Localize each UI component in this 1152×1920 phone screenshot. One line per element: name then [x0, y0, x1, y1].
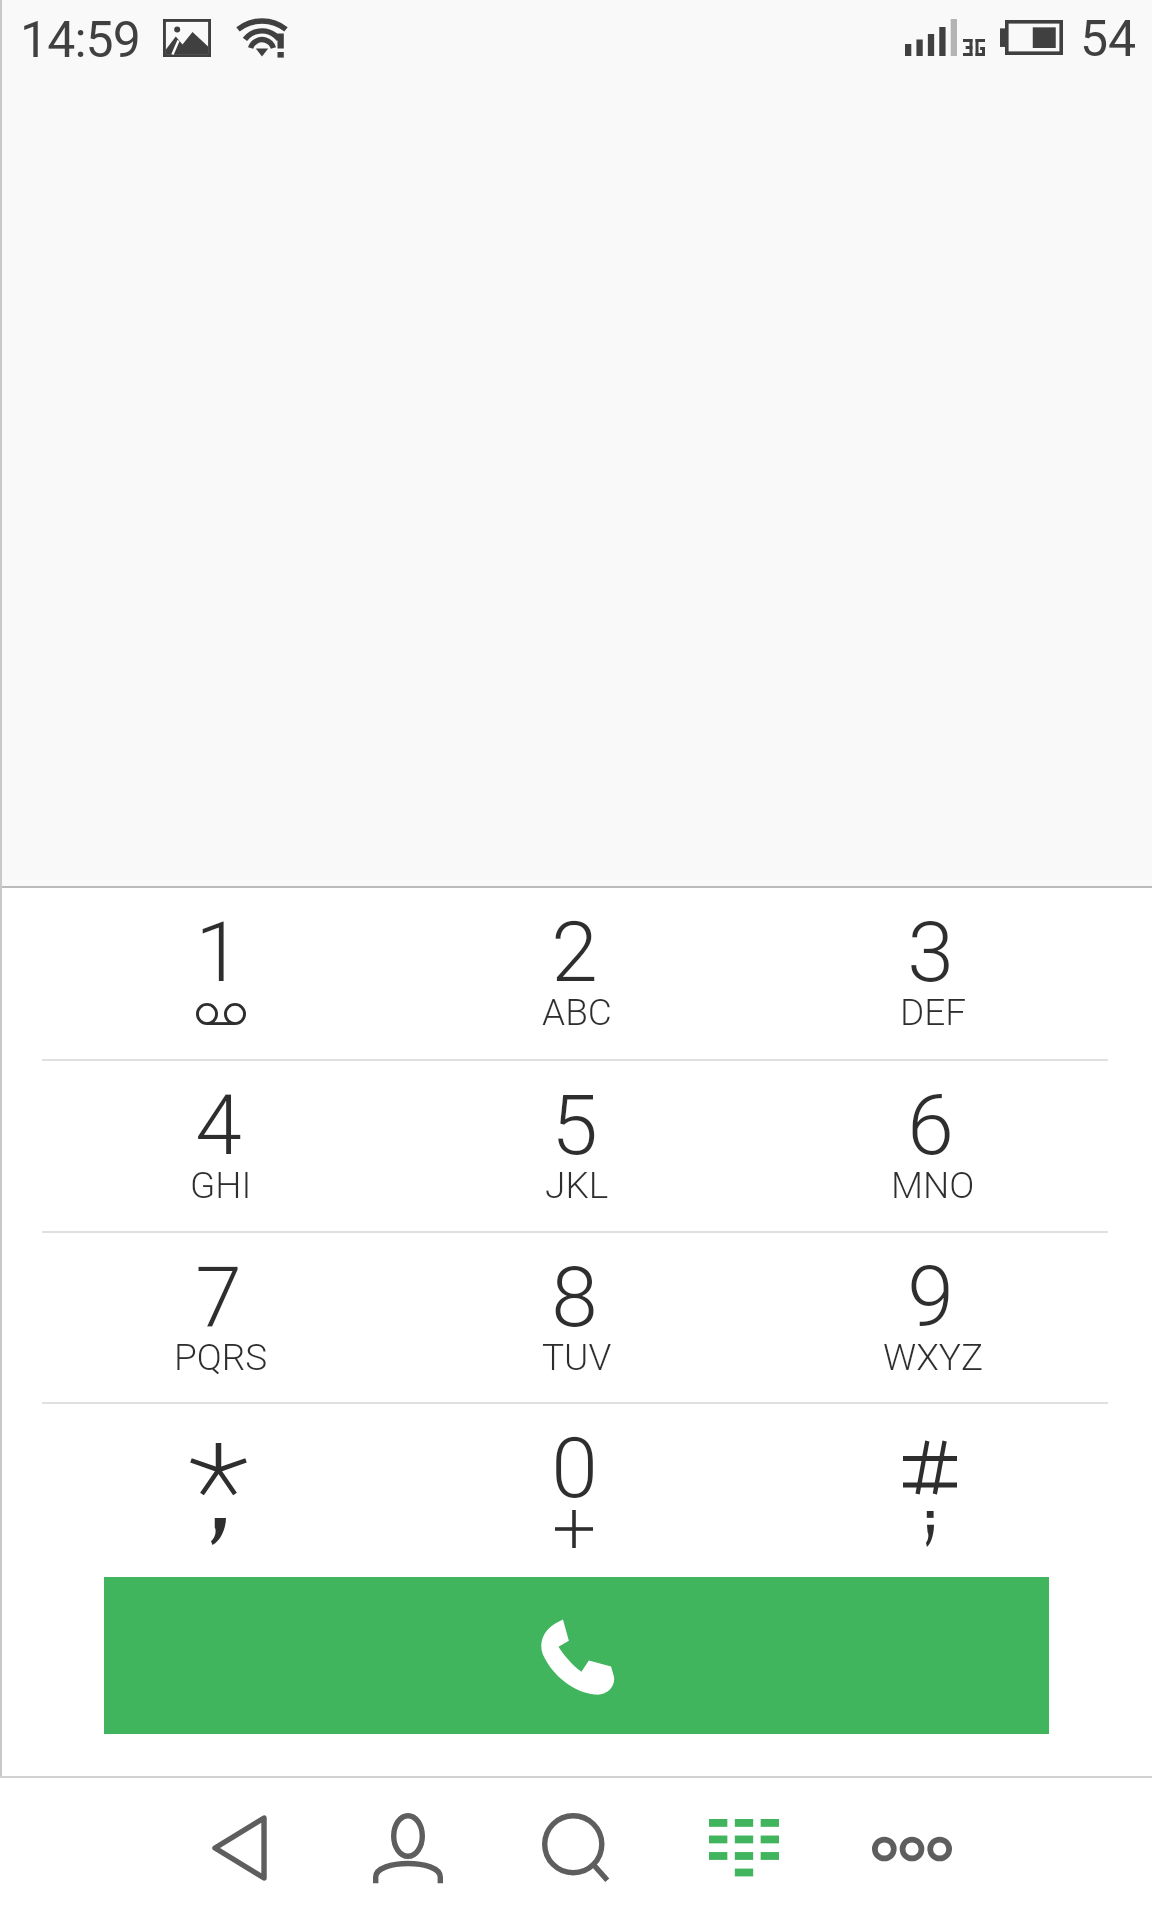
staticText: JKL	[545, 1164, 609, 1207]
staticText: MNO	[891, 1164, 975, 1207]
button[interactable]: Back	[184, 1778, 295, 1920]
button[interactable]: Dialpad	[681, 1778, 807, 1920]
staticText: TUV	[542, 1336, 612, 1379]
staticText: PQRS	[174, 1336, 268, 1379]
staticText: 5	[551, 1076, 598, 1174]
button[interactable]: 4	[40, 1059, 396, 1231]
staticText: 2	[551, 903, 598, 1001]
staticText: 3	[907, 903, 954, 1001]
button[interactable]: 6	[752, 1059, 1108, 1231]
button[interactable]: More options	[844, 1778, 980, 1920]
staticText: GHI	[190, 1164, 252, 1207]
button[interactable]: 3	[752, 886, 1108, 1059]
button[interactable]: Search	[514, 1778, 638, 1920]
button[interactable]: 9	[752, 1231, 1108, 1402]
staticText: DEF	[900, 991, 967, 1034]
button[interactable]: 1	[40, 886, 396, 1059]
staticText: 7	[195, 1248, 242, 1346]
button[interactable]: Contacts	[345, 1778, 471, 1920]
button[interactable]: 8	[396, 1231, 752, 1402]
staticText: 8	[551, 1248, 598, 1346]
staticText: ABC	[542, 991, 612, 1034]
staticText: 1	[195, 903, 242, 1001]
button[interactable]: Pound	[752, 1402, 1108, 1577]
staticText: WXYZ	[883, 1336, 984, 1379]
staticText: 54	[1080, 10, 1137, 69]
staticText: 6	[907, 1076, 954, 1174]
staticText: 4	[195, 1076, 242, 1174]
button[interactable]: Call	[104, 1577, 1049, 1734]
button[interactable]: 2	[396, 886, 752, 1059]
button[interactable]: 5	[396, 1059, 752, 1231]
button[interactable]: 0	[396, 1402, 752, 1577]
staticText: 9	[907, 1248, 954, 1346]
staticText: 14:59	[20, 11, 141, 70]
button[interactable]: 7	[40, 1231, 396, 1402]
button[interactable]: Star	[40, 1402, 396, 1577]
staticText: 0	[551, 1419, 598, 1517]
